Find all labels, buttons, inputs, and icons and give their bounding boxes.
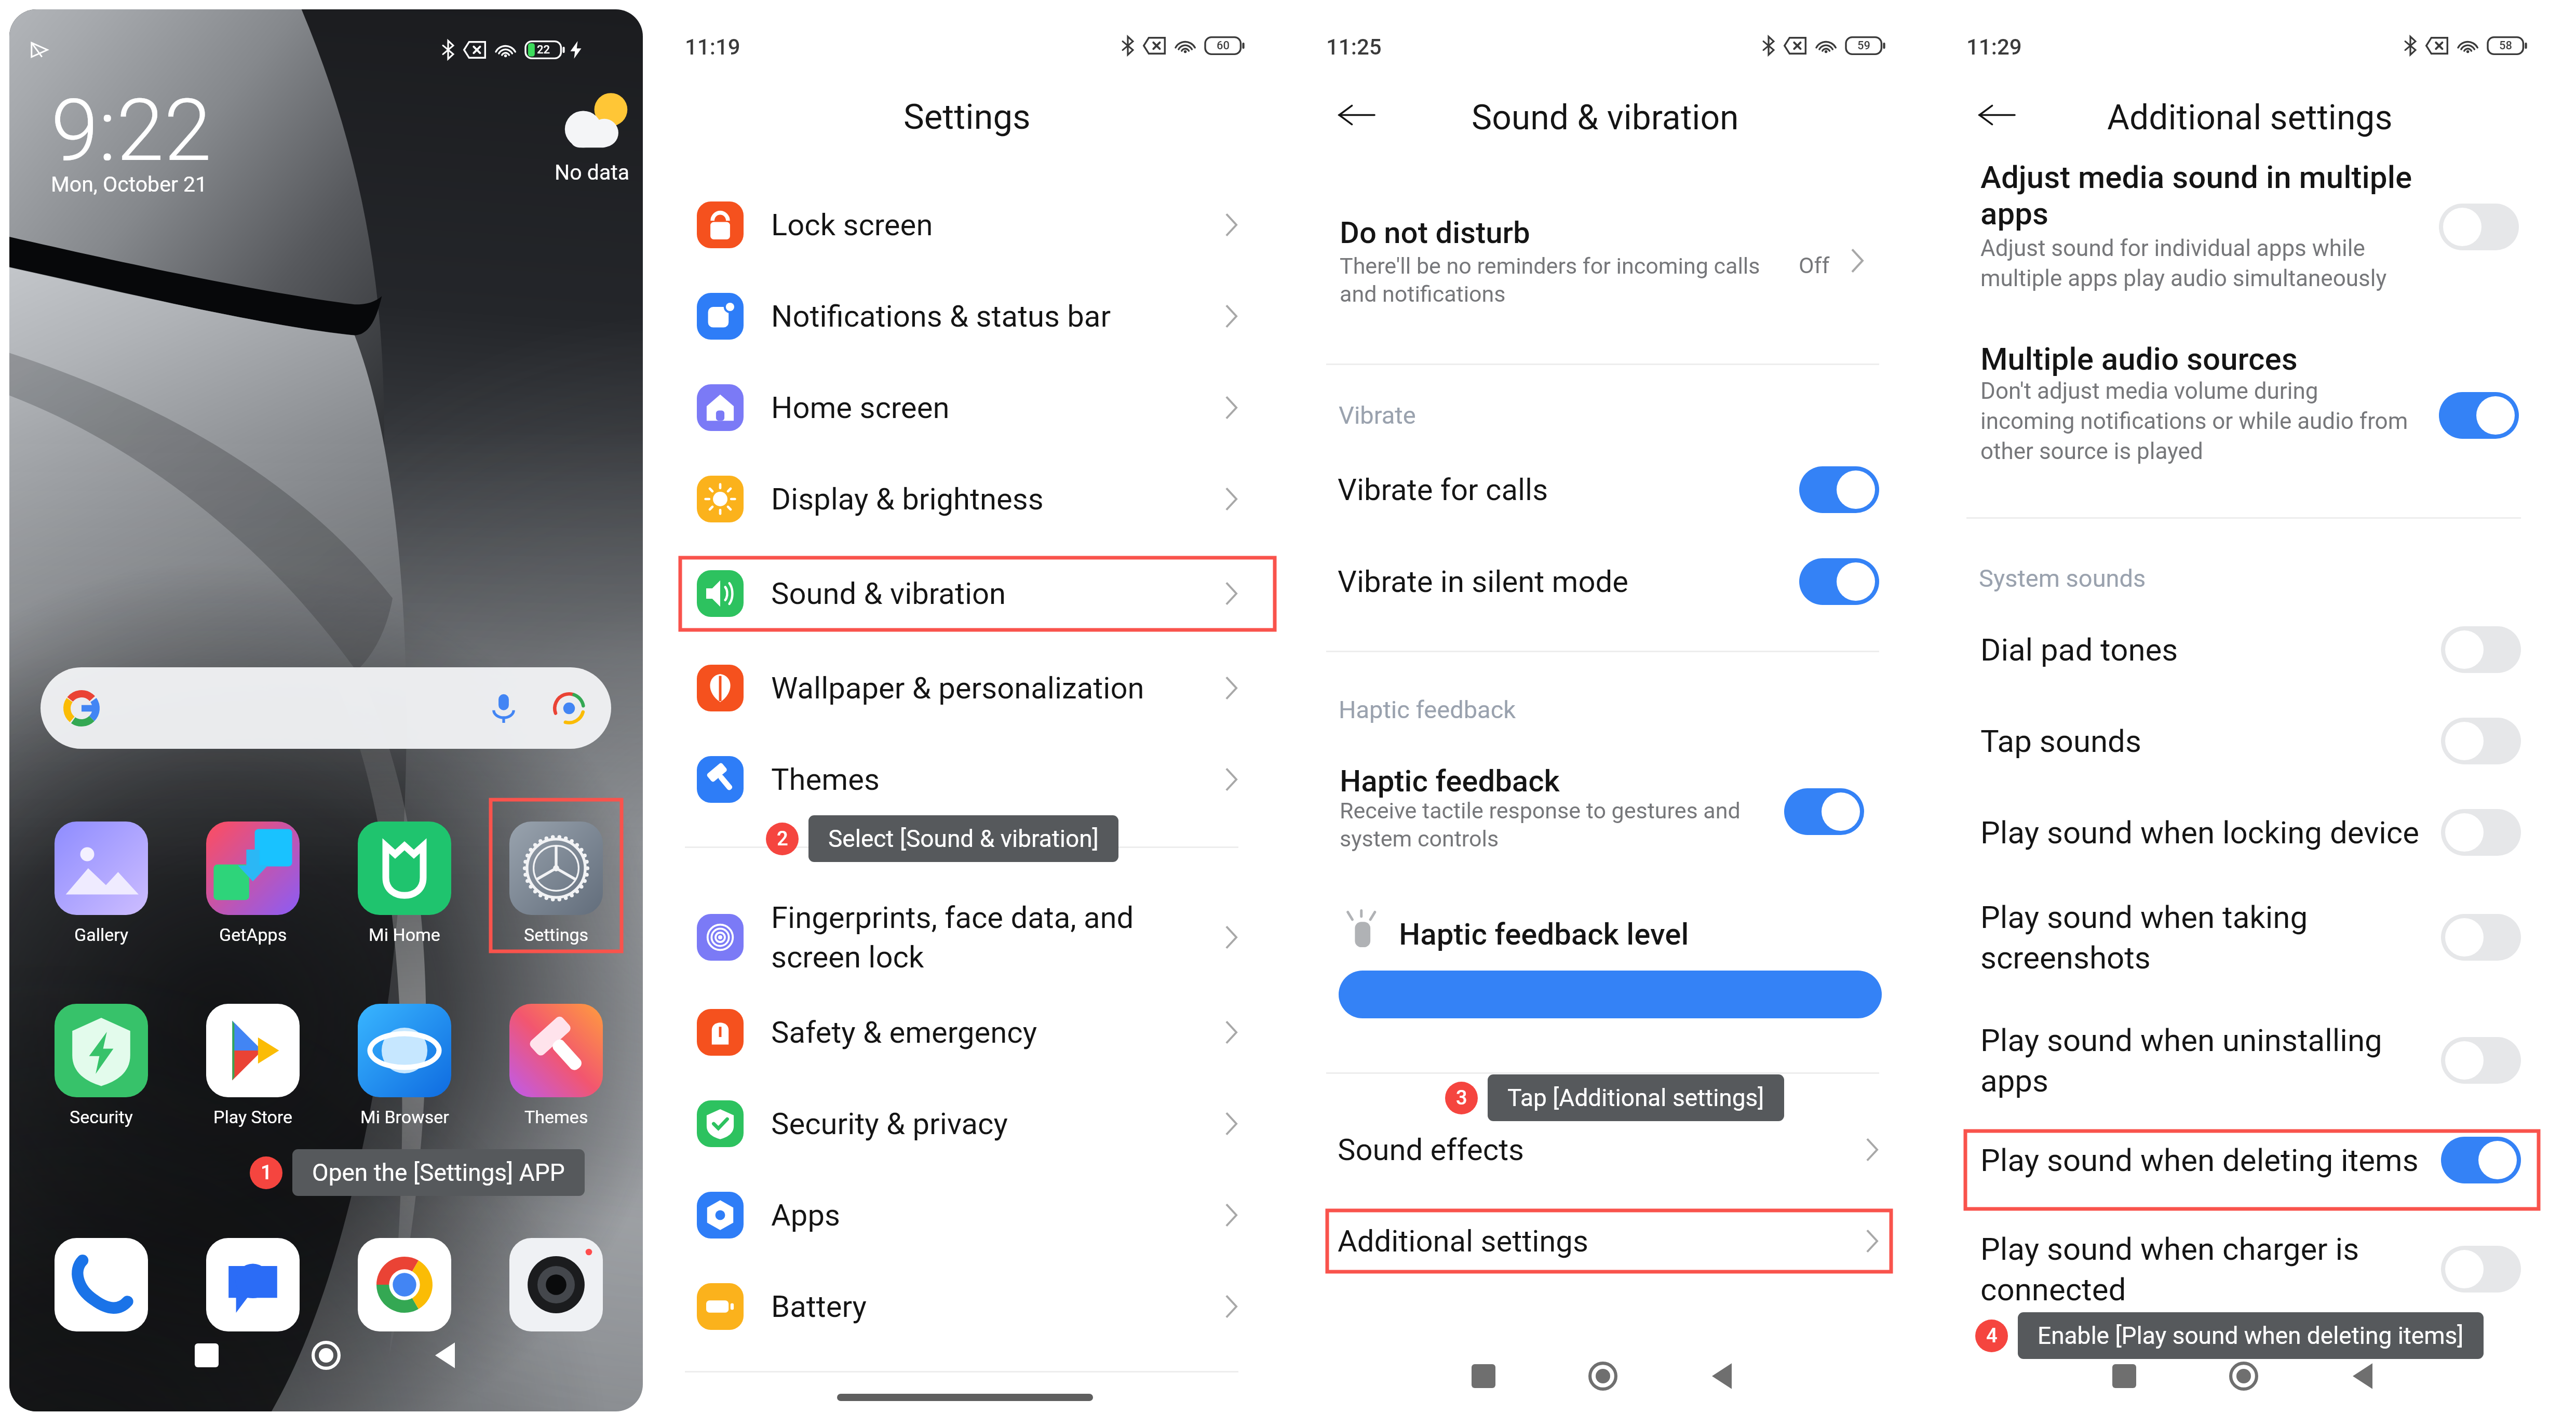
staticText: Play Store: [213, 1107, 293, 1127]
button[interactable]: Sound effects: [1338, 1118, 1879, 1182]
button[interactable]: Haptic feedback: [1326, 758, 1879, 862]
button[interactable]: Toggle on: [1799, 558, 1879, 605]
button[interactable]: Security & privacy: [697, 1093, 1238, 1155]
button[interactable]: Safety & emergency: [697, 1001, 1238, 1063]
button[interactable]: Battery: [697, 1275, 1238, 1338]
button[interactable]: Recents: [1424, 1345, 1543, 1407]
button[interactable]: Back: [386, 1324, 505, 1386]
button[interactable]: Messages: [206, 1238, 300, 1331]
staticText: Haptic feedback: [1340, 763, 1560, 799]
staticText: Vibrate: [1339, 401, 1416, 429]
staticText: Notifications & status bar: [771, 299, 1224, 334]
button[interactable]: Toggle off: [2441, 626, 2521, 673]
staticText: Sound & vibration: [771, 576, 1224, 611]
staticText: 4: [1986, 1324, 1998, 1348]
staticText: Additional settings: [1338, 1223, 1865, 1259]
button[interactable]: Dial pad tones: [1980, 621, 2521, 679]
button[interactable]: Vibrate for calls: [1338, 461, 1879, 518]
button[interactable]: Toggle off: [2441, 718, 2521, 764]
button[interactable]: Wallpaper & personalization: [697, 657, 1238, 719]
button[interactable]: Back: [1978, 99, 2028, 130]
staticText: Play sound when taking screenshots: [1980, 899, 2441, 976]
button[interactable]: Play Store: [206, 1004, 300, 1127]
button[interactable]: Mi Browser: [358, 1004, 451, 1127]
staticText: Haptic feedback level: [1399, 917, 1689, 952]
button[interactable]: Toggle off: [2439, 204, 2519, 250]
staticText: Security & privacy: [771, 1106, 1224, 1141]
button[interactable]: Additional settings: [1338, 1210, 1879, 1272]
staticText: 11:19: [685, 34, 740, 60]
staticText: Mi Home: [369, 924, 440, 945]
button[interactable]: Toggle on: [1784, 788, 1864, 835]
button[interactable]: Settings: [509, 822, 603, 945]
button[interactable]: Back: [2303, 1345, 2423, 1407]
staticText: Vibrate in silent mode: [1338, 564, 1799, 599]
staticText: 11:29: [1966, 34, 2022, 60]
button[interactable]: Home: [2184, 1345, 2303, 1407]
staticText: Themes: [524, 1107, 588, 1127]
button[interactable]: Camera: [509, 1238, 603, 1331]
button[interactable]: Display & brightness: [697, 468, 1238, 530]
button[interactable]: Home: [266, 1324, 386, 1386]
staticText: Do not disturb: [1340, 215, 1530, 250]
staticText: 22: [537, 43, 550, 57]
button[interactable]: Recents: [147, 1324, 266, 1386]
staticText: 60: [1217, 39, 1230, 52]
button[interactable]: Phone: [55, 1238, 148, 1331]
staticText: Battery: [771, 1289, 1224, 1324]
button[interactable]: Vibrate in silent mode: [1338, 553, 1879, 610]
button[interactable]: Security: [55, 1004, 148, 1127]
staticText: Play sound when uninstalling apps: [1980, 1022, 2441, 1099]
staticText: No data: [555, 160, 629, 185]
button[interactable]: Themes: [697, 748, 1238, 811]
button[interactable]: Toggle off: [2441, 914, 2521, 961]
button[interactable]: Search: [41, 667, 611, 749]
button[interactable]: Play sound when uninstalling apps: [1980, 1016, 2521, 1105]
staticText: Adjust media sound in multiple apps: [1980, 159, 2412, 232]
button[interactable]: Toggle on: [1799, 466, 1879, 513]
button[interactable]: Play sound when charger is connected: [1980, 1225, 2521, 1313]
button[interactable]: Home: [1543, 1345, 1663, 1407]
staticText: Vibrate for calls: [1338, 472, 1799, 507]
staticText: 59: [1857, 39, 1871, 52]
staticText: 9:22: [51, 80, 212, 181]
staticText: Display & brightness: [771, 481, 1224, 517]
staticText: 2: [777, 827, 788, 851]
button[interactable]: Toggle on: [2441, 1137, 2521, 1183]
button[interactable]: Gallery: [55, 822, 148, 945]
staticText: Don't adjust media volume during incomin…: [1980, 378, 2408, 465]
button[interactable]: Toggle off: [2441, 1037, 2521, 1084]
button[interactable]: Do not disturb, Off: [1326, 216, 1879, 314]
staticText: Off: [1799, 252, 1830, 278]
button[interactable]: Back: [1663, 1345, 1782, 1407]
button[interactable]: Tap sounds: [1980, 712, 2521, 770]
button[interactable]: Lock screen: [697, 194, 1238, 256]
staticText: 3: [1456, 1086, 1467, 1110]
button[interactable]: Toggle off: [2441, 1246, 2521, 1293]
button[interactable]: Toggle on: [2439, 392, 2519, 439]
button[interactable]: Multiple audio sources: [1966, 332, 2521, 483]
button[interactable]: Mi Home: [358, 822, 451, 945]
button[interactable]: Toggle off: [2441, 809, 2521, 856]
button[interactable]: Chrome: [358, 1238, 451, 1331]
button[interactable]: Play sound when locking device: [1980, 803, 2521, 861]
button[interactable]: Adjust media sound in multiple apps: [1966, 156, 2521, 312]
button[interactable]: GetApps: [206, 822, 300, 945]
staticText: 58: [2499, 39, 2513, 52]
staticText: GetApps: [219, 924, 287, 945]
button[interactable]: Sound & vibration: [697, 562, 1238, 625]
button[interactable]: Haptic feedback level: [1339, 971, 1882, 1018]
button[interactable]: Play sound when taking screenshots: [1980, 893, 2521, 981]
button[interactable]: Themes: [509, 1004, 603, 1127]
staticText: Wallpaper & personalization: [771, 670, 1224, 706]
button[interactable]: Play sound when deleting items: [1980, 1131, 2521, 1189]
staticText: There'll be no reminders for incoming ca…: [1340, 253, 1760, 307]
button[interactable]: Apps: [697, 1184, 1238, 1246]
staticText: Play sound when charger is connected: [1980, 1231, 2441, 1308]
button[interactable]: Fingerprints, face data, and screen lock: [697, 885, 1238, 989]
staticText: Sound & vibration: [1472, 98, 1739, 138]
button[interactable]: Notifications & status bar: [697, 285, 1238, 347]
button[interactable]: Home screen: [697, 376, 1238, 439]
button[interactable]: Back: [1338, 99, 1388, 130]
button[interactable]: Recents: [2065, 1345, 2184, 1407]
